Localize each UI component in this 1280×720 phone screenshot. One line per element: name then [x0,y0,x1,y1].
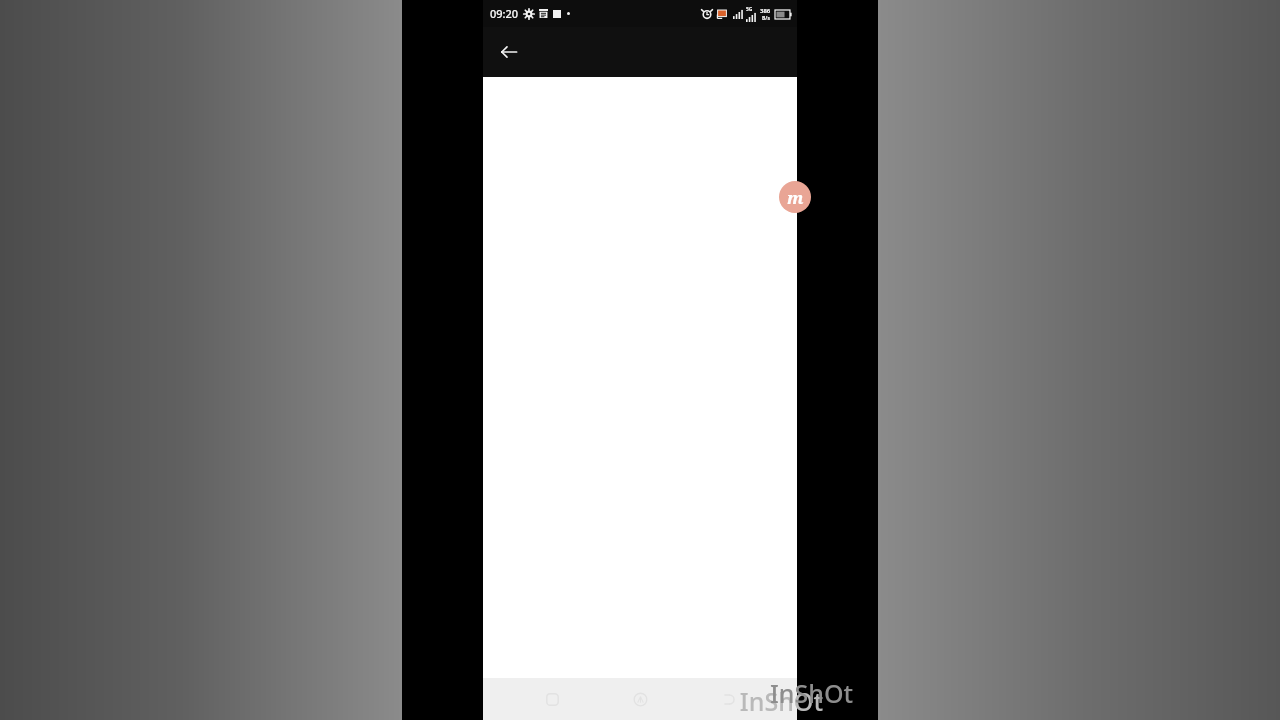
button[interactable]: m [779,181,811,213]
staticText: m [787,186,804,209]
button[interactable]: Back [709,679,749,719]
staticText: 5G [746,6,753,13]
staticText: B/s [762,15,770,22]
button[interactable]: Back [491,34,527,70]
staticText: InShOt [739,684,823,718]
staticText: 386 [760,7,771,15]
staticText: InShOt [770,676,854,710]
staticText: 09:20 [490,6,519,21]
